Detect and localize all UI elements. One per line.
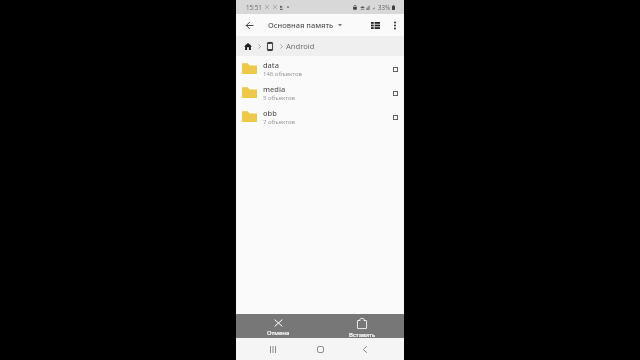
button[interactable]: Select media xyxy=(389,87,401,99)
staticText: data xyxy=(263,60,279,70)
button[interactable]: Select data xyxy=(389,63,401,75)
staticText: 5 объектов xyxy=(263,94,295,102)
staticText: Основная память xyxy=(268,20,334,30)
button[interactable]: media xyxy=(236,80,404,104)
button[interactable]: Home xyxy=(242,39,254,53)
button[interactable]: Android xyxy=(286,36,315,56)
button[interactable]: Recent apps xyxy=(261,338,285,360)
button[interactable]: Device storage xyxy=(264,39,276,53)
button[interactable]: data xyxy=(236,56,404,80)
button[interactable]: Отмена xyxy=(236,314,320,338)
button[interactable]: Вставить xyxy=(320,314,404,338)
staticText: 146 объектов xyxy=(263,70,302,78)
staticText: 15:51 xyxy=(246,3,262,11)
button[interactable]: Select obb xyxy=(389,111,401,123)
button[interactable]: Back xyxy=(353,338,377,360)
staticText: Вставить xyxy=(349,331,376,339)
staticText: Отмена xyxy=(267,329,290,337)
staticText: Android xyxy=(286,41,315,51)
button[interactable]: Основная память xyxy=(268,20,342,30)
button[interactable]: More options xyxy=(387,17,403,33)
staticText: obb xyxy=(263,108,277,118)
button[interactable]: obb xyxy=(236,104,404,128)
staticText: 33% xyxy=(378,3,391,11)
button[interactable]: Back xyxy=(241,14,257,36)
button[interactable]: Switch view xyxy=(367,17,383,33)
button[interactable]: Home xyxy=(308,338,332,360)
staticText: 7 объектов xyxy=(263,118,295,126)
staticText: media xyxy=(263,84,286,94)
